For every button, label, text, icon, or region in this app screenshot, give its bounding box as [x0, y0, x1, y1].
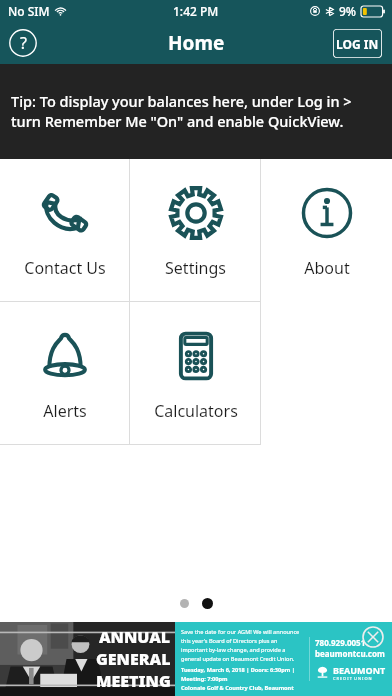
button[interactable]: Contact Us [0, 159, 130, 301]
staticText: About [304, 257, 350, 279]
staticText: Calculators [154, 400, 238, 422]
staticText: BEAUMONT [333, 664, 386, 676]
staticText: 9% [339, 3, 357, 19]
staticText: 1:42 PM [173, 3, 219, 19]
button[interactable]: Page 1 [180, 599, 189, 608]
staticText: LOG IN [336, 36, 379, 52]
button[interactable]: Help [5, 25, 41, 61]
staticText: Save the date for our AGM! We will annou… [181, 628, 303, 662]
button[interactable]: ANNUAL [0, 622, 392, 696]
staticText: Settings [165, 257, 226, 279]
staticText: 780.929.0051 [315, 637, 366, 648]
button[interactable]: Calculators [130, 302, 261, 444]
button[interactable]: LOG IN [333, 29, 382, 58]
staticText: Home [168, 30, 225, 56]
staticText: MEETING [96, 670, 171, 692]
staticText: ANNUAL [99, 626, 171, 648]
staticText: No SIM [8, 3, 50, 19]
button[interactable]: Alerts [0, 302, 130, 444]
staticText: beaumontcu.com [315, 648, 385, 659]
staticText: C R E D I T U N I O N [333, 676, 372, 681]
staticText: GENERAL [96, 648, 171, 670]
staticText: Tuesday, March 6, 2018 | Doors: 6:30pm |… [181, 666, 303, 691]
staticText: Contact Us [24, 257, 106, 279]
staticText: ? [20, 32, 27, 54]
staticText: Tip: To display your balances here, unde… [11, 91, 382, 132]
staticText: Alerts [43, 400, 87, 422]
button[interactable]: Settings [130, 159, 261, 301]
button[interactable]: Page 2 [202, 598, 213, 609]
button[interactable]: Close ad [362, 626, 384, 648]
button[interactable]: About [261, 159, 392, 301]
